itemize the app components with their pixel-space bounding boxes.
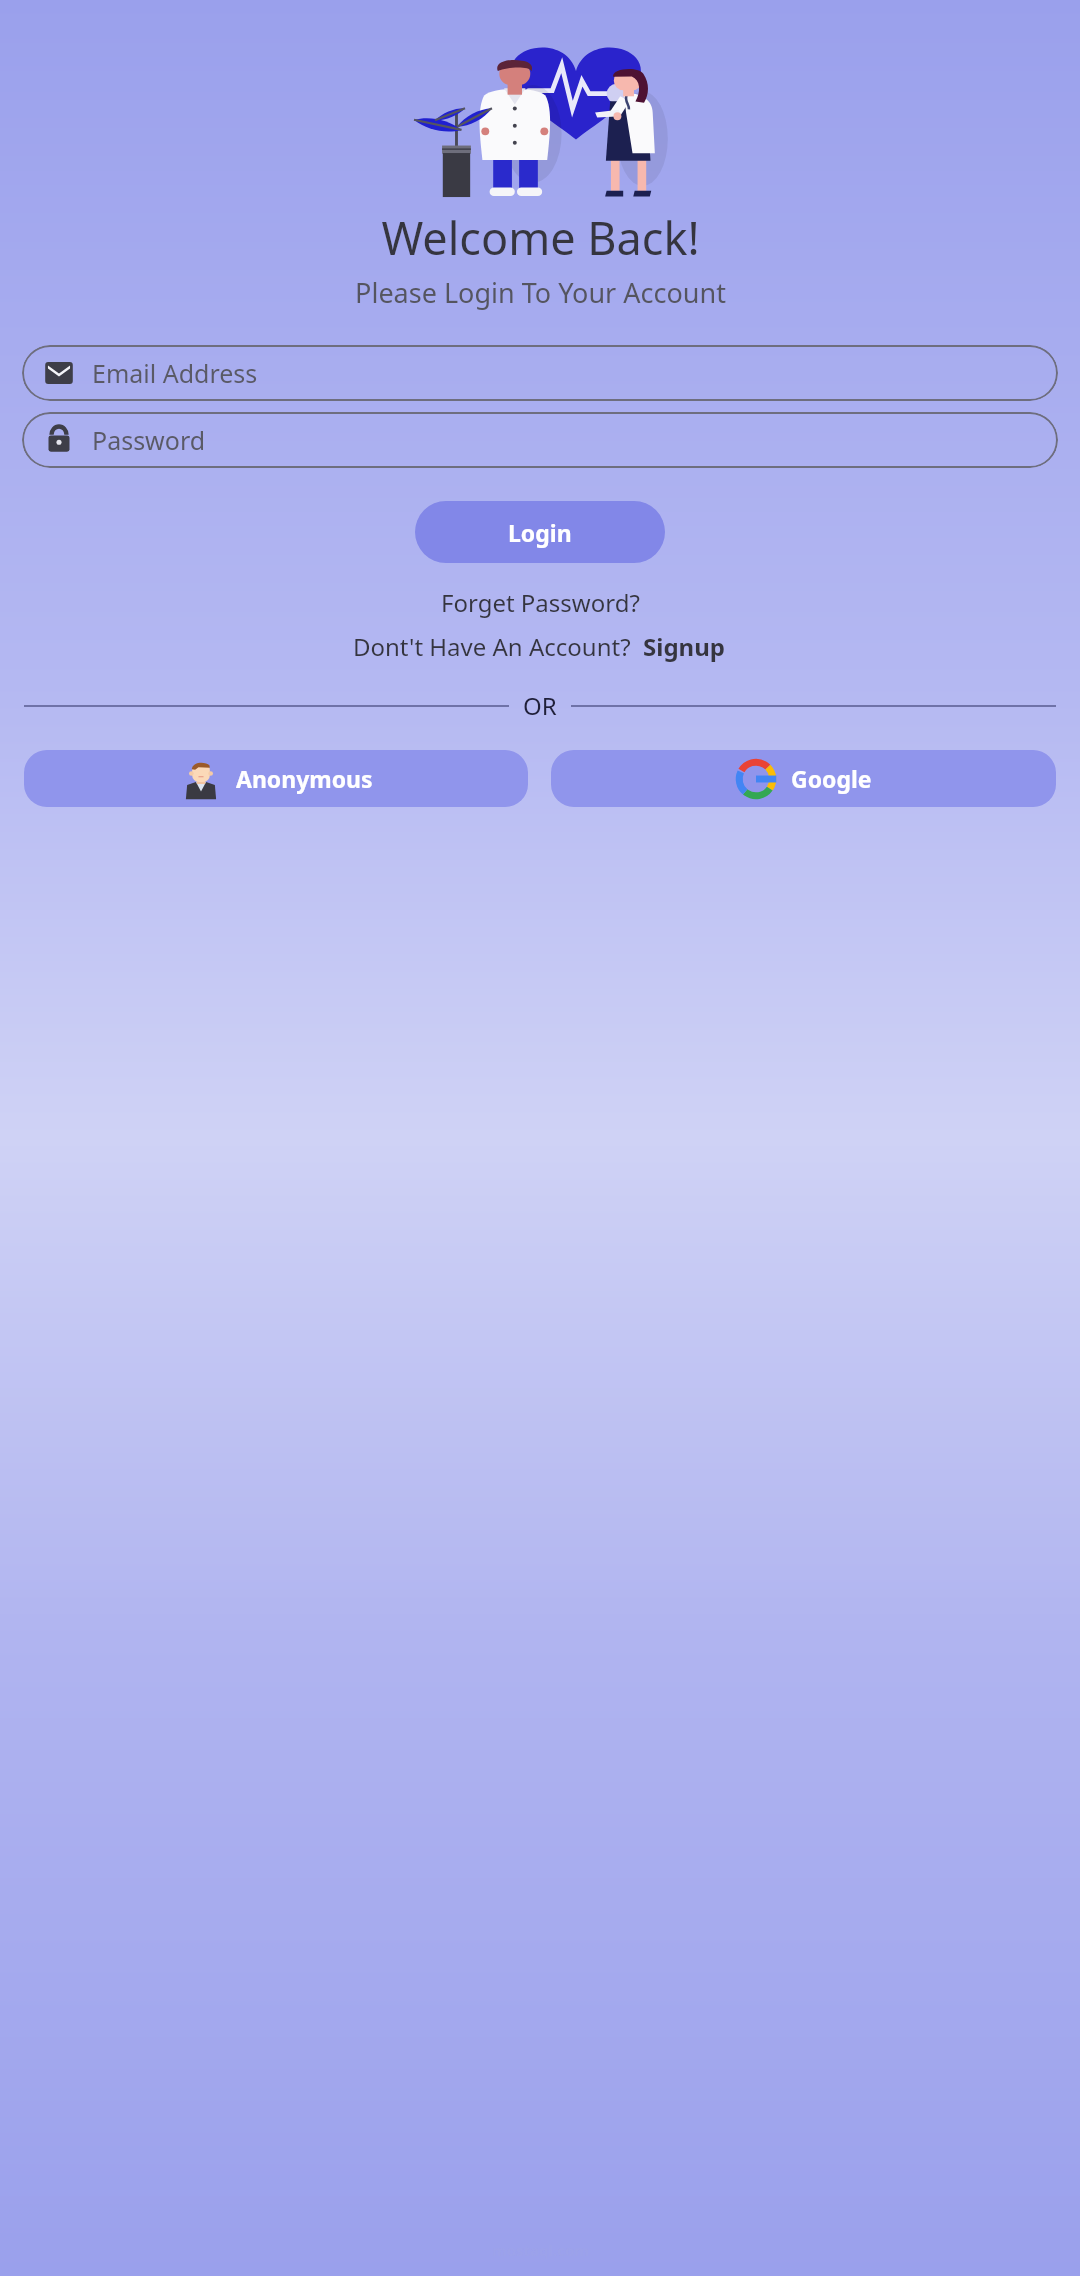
staticText: Google	[791, 763, 872, 794]
staticText: OR	[523, 689, 557, 722]
button[interactable]: Login	[415, 501, 665, 563]
staticText: Please Login To Your Account	[355, 274, 726, 311]
staticText: Forget Password?	[441, 586, 640, 619]
staticText: Dont't Have An Account?	[353, 630, 631, 663]
staticText: Password	[92, 423, 206, 457]
staticText: Email Address	[92, 356, 258, 390]
button[interactable]: Email Address	[22, 345, 1058, 401]
button[interactable]: Signup	[641, 628, 727, 665]
button[interactable]: Password	[22, 412, 1058, 468]
button[interactable]: Google	[551, 750, 1056, 807]
staticText: Signup	[643, 630, 725, 663]
staticText: Welcome Back!	[381, 207, 700, 268]
button[interactable]: Forget Password?	[433, 584, 648, 621]
staticText: Anonymous	[236, 763, 373, 794]
button[interactable]: Anonymous	[24, 750, 528, 807]
staticText: Login	[508, 517, 572, 548]
